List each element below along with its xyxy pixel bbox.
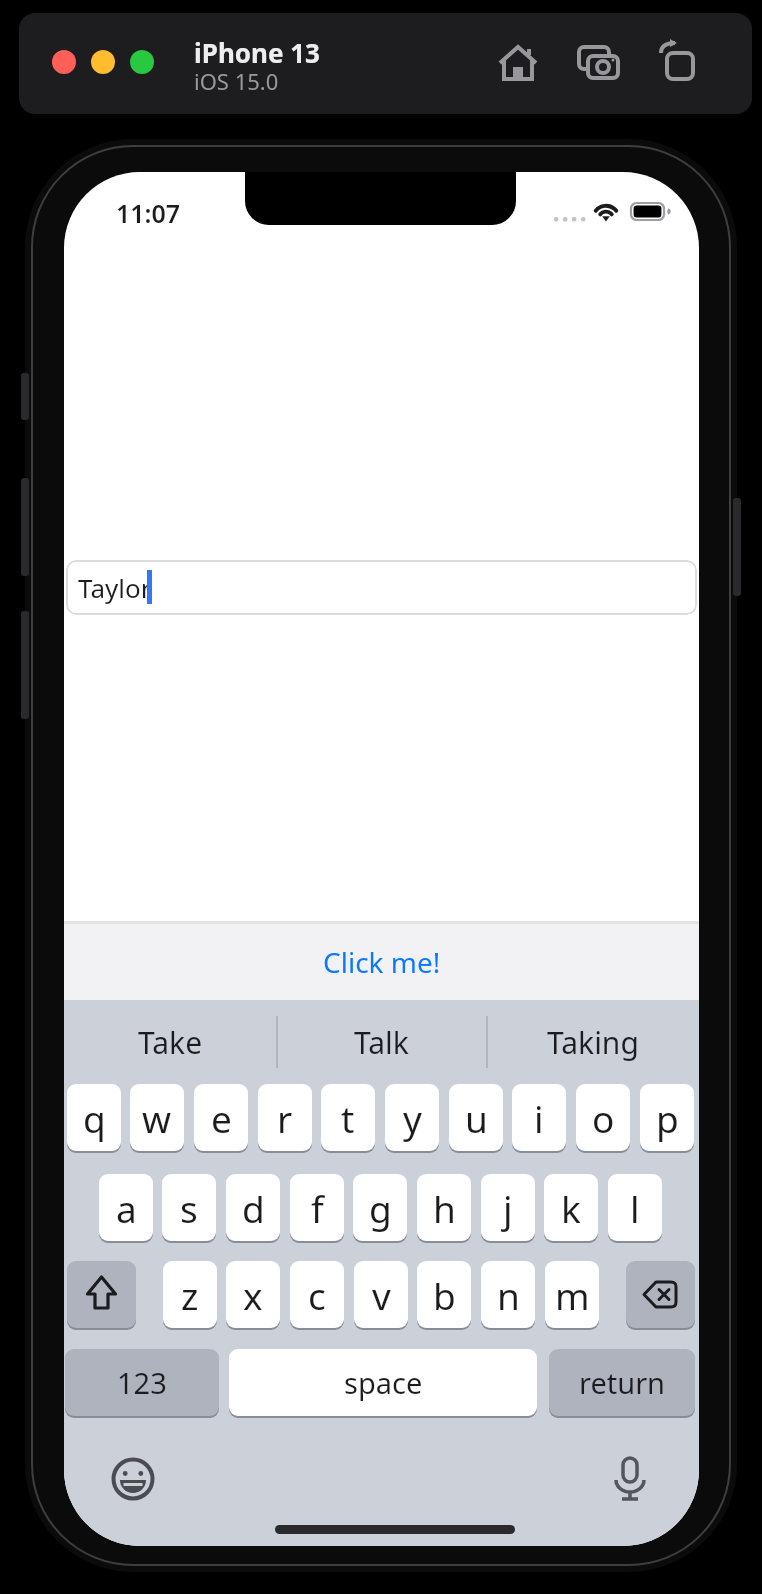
staticText: y xyxy=(403,1093,422,1143)
staticText: return xyxy=(579,1363,666,1402)
button[interactable]: i xyxy=(512,1084,566,1151)
button[interactable]: a xyxy=(99,1174,153,1241)
button[interactable] xyxy=(577,41,621,85)
button[interactable]: 123 xyxy=(65,1349,219,1416)
button[interactable] xyxy=(52,50,76,74)
staticText: b xyxy=(433,1270,456,1320)
staticText: Taylor xyxy=(78,570,152,605)
staticText: c xyxy=(308,1270,326,1320)
staticText: iOS 15.0 xyxy=(194,66,279,92)
staticText: m xyxy=(555,1270,590,1320)
button[interactable]: p xyxy=(640,1084,694,1151)
staticText: e xyxy=(211,1093,232,1143)
staticText: g xyxy=(369,1183,392,1233)
staticText: o xyxy=(592,1093,615,1143)
button[interactable]: return xyxy=(549,1349,695,1416)
button[interactable]: y xyxy=(385,1084,439,1151)
staticText: Click me! xyxy=(323,943,441,981)
button[interactable]: l xyxy=(608,1174,662,1241)
button[interactable]: Click me! xyxy=(64,924,699,1000)
staticText: t xyxy=(341,1093,355,1143)
button[interactable]: s xyxy=(162,1174,216,1241)
button[interactable]: space xyxy=(229,1349,537,1416)
button[interactable]: v xyxy=(354,1261,408,1328)
staticText: p xyxy=(656,1093,679,1143)
button[interactable]: x xyxy=(226,1261,280,1328)
button[interactable]: k xyxy=(544,1174,598,1241)
staticText: iPhone 13 xyxy=(194,35,320,65)
staticText: Talk xyxy=(354,1022,409,1063)
staticText: w xyxy=(142,1093,172,1143)
staticText: l xyxy=(630,1183,640,1233)
button[interactable]: b xyxy=(417,1261,471,1328)
button[interactable]: c xyxy=(290,1261,344,1328)
staticText: j xyxy=(503,1183,513,1233)
button[interactable]: m xyxy=(545,1261,599,1328)
button[interactable] xyxy=(626,1261,695,1328)
staticText: x xyxy=(243,1270,263,1320)
button[interactable] xyxy=(657,39,701,83)
staticText: a xyxy=(116,1183,137,1233)
staticText: k xyxy=(561,1183,581,1233)
staticText: h xyxy=(433,1183,456,1233)
button[interactable]: o xyxy=(576,1084,630,1151)
staticText: space xyxy=(344,1363,423,1402)
button[interactable]: t xyxy=(321,1084,375,1151)
staticText: Take xyxy=(138,1022,203,1063)
button[interactable] xyxy=(111,1457,155,1501)
staticText: r xyxy=(277,1093,293,1143)
button[interactable]: w xyxy=(130,1084,184,1151)
staticText: s xyxy=(180,1183,198,1233)
staticText: i xyxy=(534,1093,544,1143)
staticText: z xyxy=(181,1270,199,1320)
staticText: f xyxy=(311,1183,324,1233)
button[interactable]: j xyxy=(481,1174,535,1241)
staticText: 123 xyxy=(117,1363,167,1402)
staticText: q xyxy=(83,1093,106,1143)
button[interactable]: u xyxy=(449,1084,503,1151)
button[interactable]: f xyxy=(290,1174,344,1241)
button[interactable] xyxy=(67,1261,136,1328)
staticText: v xyxy=(372,1270,391,1320)
button[interactable] xyxy=(130,50,154,74)
button[interactable]: z xyxy=(163,1261,217,1328)
button[interactable]: n xyxy=(481,1261,535,1328)
button[interactable]: e xyxy=(194,1084,248,1151)
button[interactable] xyxy=(610,1456,650,1502)
staticText: d xyxy=(242,1183,265,1233)
button[interactable]: h xyxy=(417,1174,471,1241)
staticText: u xyxy=(465,1093,488,1143)
button[interactable]: d xyxy=(226,1174,280,1241)
staticText: Taking xyxy=(547,1022,639,1063)
button[interactable] xyxy=(496,41,540,85)
staticText: n xyxy=(497,1270,520,1320)
button[interactable]: g xyxy=(353,1174,407,1241)
button[interactable]: q xyxy=(67,1084,121,1151)
button[interactable]: Taylor xyxy=(66,560,697,615)
button[interactable]: r xyxy=(258,1084,312,1151)
button[interactable] xyxy=(91,50,115,74)
staticText: 11:07 xyxy=(116,196,181,228)
